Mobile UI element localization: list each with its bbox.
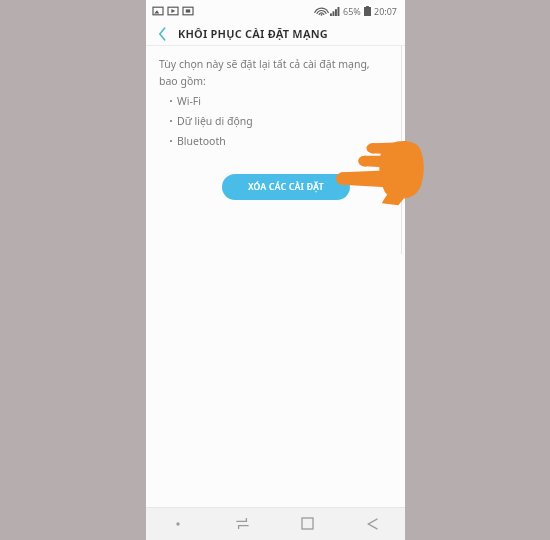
button[interactable]: Menu dot <box>146 507 210 540</box>
staticText: Bluetooth <box>177 134 226 148</box>
staticText: 65% <box>343 5 361 17</box>
button[interactable]: XÓA CÁC CÀI ĐẶT <box>222 174 350 200</box>
staticText: Wi-Fi <box>177 94 202 108</box>
staticText: Tùy chọn này sẽ đặt lại tất cả cài đặt m… <box>159 57 385 88</box>
staticText: KHÔI PHỤC CÀI ĐẶT MẠNG <box>178 26 329 41</box>
button[interactable]: Recents <box>210 507 275 540</box>
staticText: XÓA CÁC CÀI ĐẶT <box>248 181 324 193</box>
button[interactable]: Home <box>275 507 340 540</box>
staticText: Dữ liệu di động <box>177 114 253 128</box>
staticText: 20:07 <box>374 5 398 17</box>
button[interactable]: Back <box>152 24 172 44</box>
button[interactable]: Back <box>340 507 405 540</box>
